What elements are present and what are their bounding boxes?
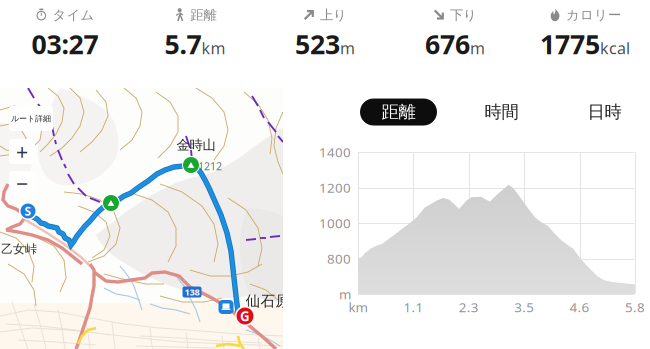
staticText: 523 [295, 26, 340, 62]
staticText: 距離 [381, 101, 415, 123]
staticText: − [16, 169, 28, 198]
staticText: 2.3 [459, 298, 479, 316]
button[interactable]: 距離 [360, 98, 437, 125]
staticText: 乙女峠 [1, 242, 37, 256]
staticText: 1200 [319, 179, 351, 196]
button[interactable]: Zoom out [9, 171, 35, 196]
staticText: 1400 [319, 143, 351, 161]
staticText: ルート詳細 [11, 114, 51, 123]
staticText: 5.8 [625, 298, 645, 316]
staticText: 800 [327, 250, 351, 267]
staticText: 676 [425, 26, 470, 62]
button[interactable]: 時間 [463, 98, 540, 125]
staticText: S [24, 203, 31, 219]
staticText: 1.1 [403, 298, 423, 316]
button[interactable]: ルート詳細 [9, 106, 53, 131]
staticText: km [201, 37, 225, 59]
staticText: 5.7 [164, 26, 201, 62]
staticText: kcal [600, 37, 630, 59]
staticText: 下り [450, 7, 477, 23]
button[interactable]: 日時 [566, 98, 643, 125]
staticText: 1775 [540, 26, 600, 62]
staticText: m [339, 285, 351, 303]
staticText: 3.5 [514, 298, 534, 316]
staticText: G [240, 307, 250, 325]
staticText: + [16, 137, 28, 166]
staticText: 138 [184, 286, 199, 298]
staticText: カロリー [566, 7, 621, 23]
staticText: 距離 [190, 7, 216, 23]
staticText: 1000 [319, 214, 351, 232]
staticText: 時間 [484, 101, 518, 123]
staticText: 1212 [198, 159, 222, 173]
staticText: 日時 [587, 101, 621, 123]
button[interactable]: Zoom in [9, 139, 35, 164]
staticText: 仙石原 [245, 292, 290, 310]
staticText: km [348, 298, 367, 316]
staticText: m [470, 37, 485, 59]
staticText: 上り [320, 7, 347, 23]
staticText: 金時山 [176, 137, 215, 153]
staticText: 4.6 [570, 298, 590, 316]
staticText: タイム [52, 7, 94, 23]
staticText: 03:27 [31, 26, 98, 62]
staticText: m [340, 37, 355, 59]
